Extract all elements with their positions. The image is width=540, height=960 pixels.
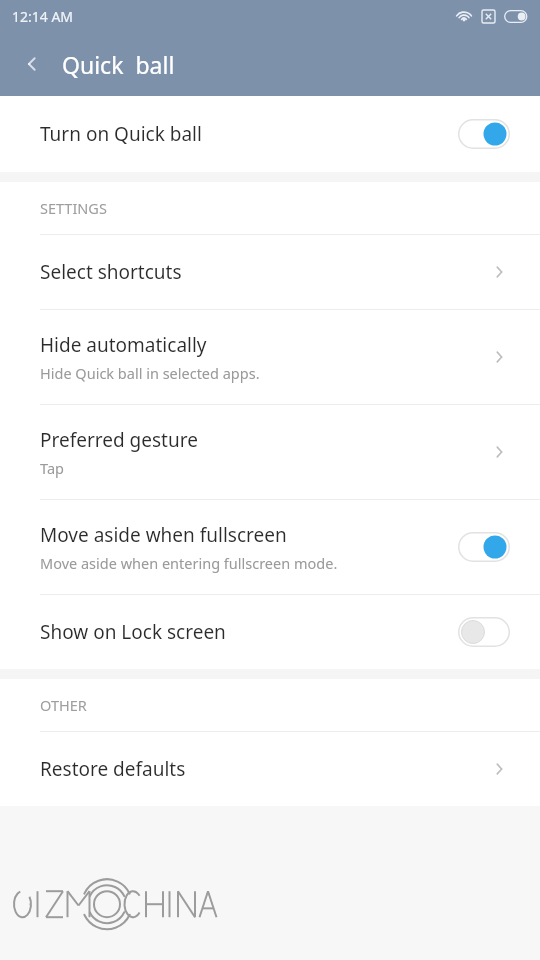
staticText: 12:14 AM [12,7,74,26]
button[interactable]: Select shortcuts [0,235,540,309]
staticText: Hide Quick ball in selected apps. [40,363,260,383]
button[interactable]: Move aside when fullscreen [0,500,540,594]
button[interactable]: Turn on Quick ball [0,96,540,172]
button[interactable]: Toggle on [458,119,510,149]
button[interactable]: Back [12,44,52,84]
button[interactable]: Restore defaults [0,732,540,806]
staticText: Show on Lock screen [40,619,226,645]
button[interactable]: Show on Lock screen [0,595,540,669]
staticText: Tap [40,458,64,478]
button[interactable]: Hide automatically [0,310,540,404]
staticText: Select shortcuts [40,259,182,285]
button[interactable]: Toggle on [458,532,510,562]
staticText: Turn on Quick ball [40,121,202,147]
staticText: Hide automatically [40,332,207,358]
staticText: Restore defaults [40,756,186,782]
button[interactable]: Preferred gesture [0,405,540,499]
staticText: Preferred gesture [40,427,198,453]
staticText: OTHER [40,695,87,715]
button[interactable]: Toggle off [458,617,510,647]
staticText: SETTINGS [40,198,107,218]
staticText: Move aside when entering fullscreen mode… [40,553,338,573]
staticText: Quick ball [62,49,175,80]
staticText: Move aside when fullscreen [40,522,287,548]
